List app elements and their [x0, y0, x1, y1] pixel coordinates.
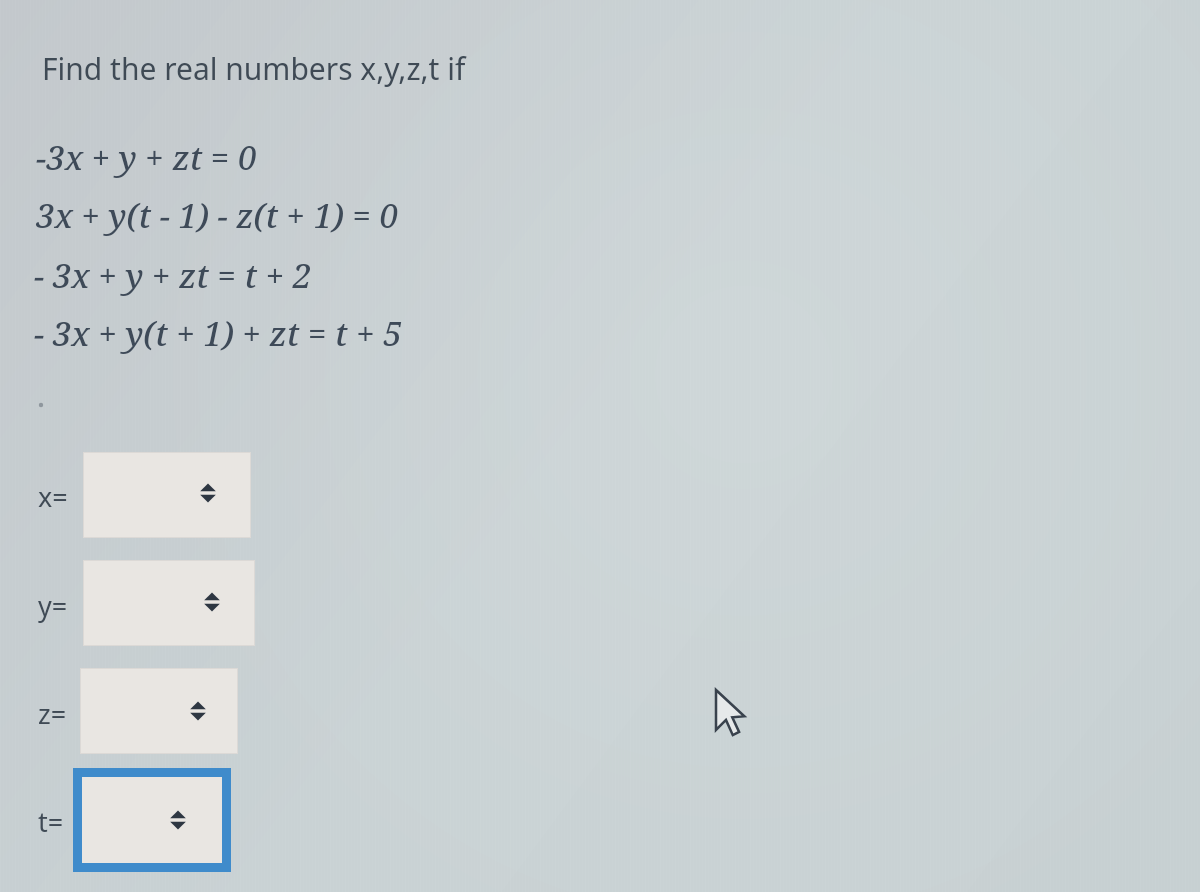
staticText: y= [38, 587, 68, 624]
button[interactable]: Increment or decrement y= [199, 587, 225, 617]
button[interactable]: Increment or decrement x= [195, 478, 221, 508]
button[interactable]: Value for y= [83, 560, 255, 646]
button[interactable]: Value for x= [83, 452, 251, 538]
staticText: z= [38, 695, 67, 732]
staticText: Find the real numbers x,y,z,t if [42, 48, 466, 89]
button[interactable]: t= [38, 803, 64, 840]
button[interactable]: x= [38, 478, 68, 515]
staticText: −3x + y + zt = 0 [36, 135, 257, 180]
button[interactable]: Value for t= [82, 777, 222, 863]
staticText: x= [38, 478, 68, 515]
button[interactable]: Value for z= [80, 668, 238, 754]
button[interactable]: Find the real numbers x,y,z,t if [42, 48, 466, 89]
button[interactable]: Increment or decrement z= [185, 696, 211, 726]
button[interactable]: y= [38, 587, 68, 624]
button[interactable]: Increment or decrement t= [165, 805, 191, 835]
staticText: − 3x + y(t + 1) + zt = t + 5 [34, 311, 402, 356]
staticText: 3x + y(t − 1) − z(t + 1) = 0 [36, 193, 399, 238]
button[interactable]: z= [38, 695, 67, 732]
staticText: t= [38, 803, 64, 840]
staticText: − 3x + y + zt = t + 2 [34, 253, 312, 298]
